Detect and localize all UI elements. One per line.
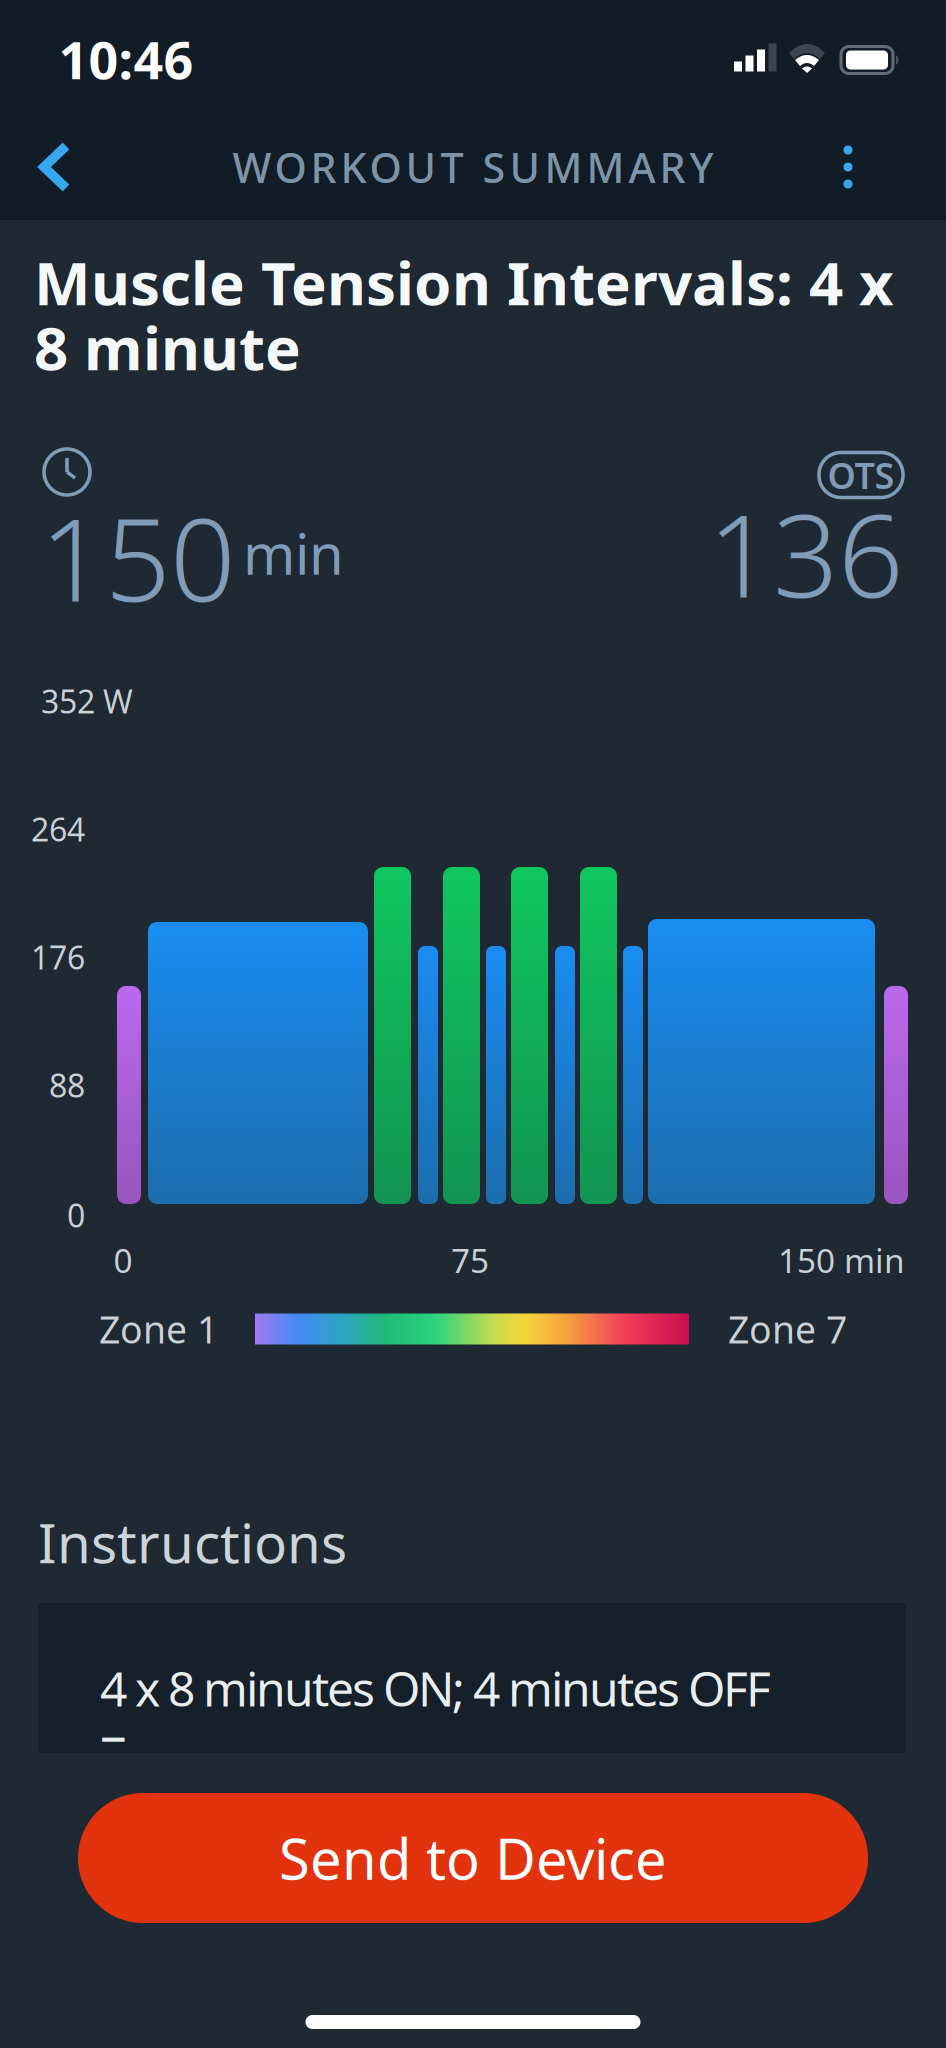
staticText: 0 bbox=[67, 1194, 85, 1236]
button[interactable]: Send to Device bbox=[78, 1793, 868, 1923]
staticText: Send to Device bbox=[279, 1821, 667, 1895]
staticText: Muscle Tension Intervals: 4 x bbox=[34, 242, 894, 322]
staticText: WORKOUT SUMMARY bbox=[232, 140, 713, 194]
staticText: – bbox=[100, 1698, 127, 1768]
staticText: OTS bbox=[827, 451, 894, 499]
staticText: Zone 7 bbox=[728, 1304, 847, 1354]
staticText: 176 bbox=[31, 936, 85, 978]
staticText: 8 minute bbox=[34, 307, 301, 387]
staticText: Zone 1 bbox=[99, 1304, 218, 1354]
staticText: min bbox=[243, 516, 344, 590]
staticText: 352 W bbox=[41, 680, 133, 722]
staticText: 150 bbox=[40, 481, 235, 633]
staticText: 136 bbox=[708, 477, 903, 629]
staticText: Instructions bbox=[38, 1506, 347, 1578]
staticText: 150 min bbox=[778, 1238, 905, 1282]
staticText: 264 bbox=[31, 808, 85, 850]
staticText: 88 bbox=[49, 1064, 85, 1106]
staticText: 0 bbox=[113, 1238, 132, 1282]
staticText: 4 x 8 minutes ON; 4 minutes OFF bbox=[100, 1656, 771, 1720]
staticText: 75 bbox=[451, 1238, 489, 1282]
button[interactable]: Back bbox=[27, 131, 83, 203]
staticText: 10:46 bbox=[58, 24, 193, 94]
button[interactable]: More options bbox=[829, 131, 866, 202]
